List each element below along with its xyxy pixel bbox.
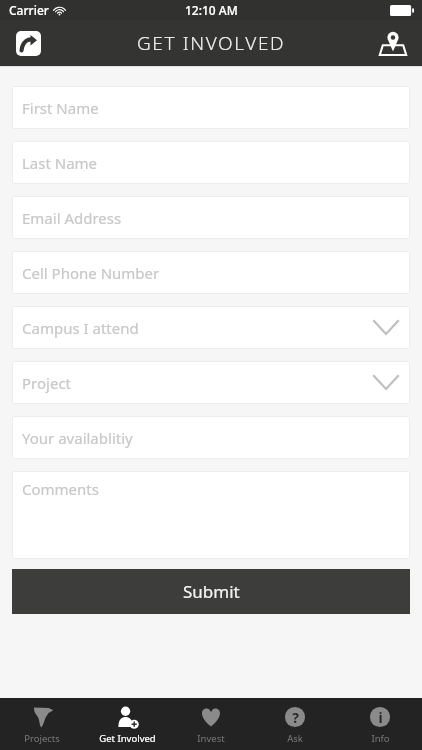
button[interactable]: Your availablitiy xyxy=(12,416,410,459)
staticText: Project xyxy=(22,373,71,393)
staticText: Last Name xyxy=(22,153,98,173)
button[interactable]: Email Address xyxy=(12,196,410,239)
button[interactable]: Share xyxy=(14,29,42,57)
staticText: Your availablitiy xyxy=(22,428,133,448)
staticText: Email Address xyxy=(22,208,122,228)
button[interactable]: Get Involved xyxy=(85,700,169,749)
button[interactable]: Project xyxy=(12,361,410,404)
button[interactable]: Invest xyxy=(169,700,253,749)
button[interactable]: ? xyxy=(253,700,337,749)
staticText: Submit xyxy=(183,580,240,603)
staticText: i xyxy=(378,708,383,727)
staticText: 12:10 AM xyxy=(185,2,238,18)
button[interactable]: Comments xyxy=(12,471,410,559)
button[interactable]: Submit xyxy=(12,569,410,614)
staticText: GET INVOLVED xyxy=(137,30,286,56)
button[interactable]: i xyxy=(338,700,422,749)
button[interactable]: Cell Phone Number xyxy=(12,251,410,294)
button[interactable]: Last Name xyxy=(12,141,410,184)
staticText: Cell Phone Number xyxy=(22,263,160,283)
staticText: Carrier xyxy=(9,2,49,18)
button[interactable]: Campus I attend xyxy=(12,306,410,349)
staticText: Comments xyxy=(22,479,99,499)
staticText: First Name xyxy=(22,98,99,118)
staticText: Campus I attend xyxy=(22,318,139,338)
staticText: ? xyxy=(292,708,299,727)
button[interactable]: First Name xyxy=(12,86,410,129)
staticText: Get Involved xyxy=(99,732,156,745)
staticText: Ask xyxy=(287,732,303,745)
button[interactable]: Projects xyxy=(0,700,84,749)
button[interactable]: Location xyxy=(376,26,410,60)
staticText: Info xyxy=(371,732,390,745)
staticText: Invest xyxy=(197,732,225,745)
staticText: Projects xyxy=(24,732,60,745)
